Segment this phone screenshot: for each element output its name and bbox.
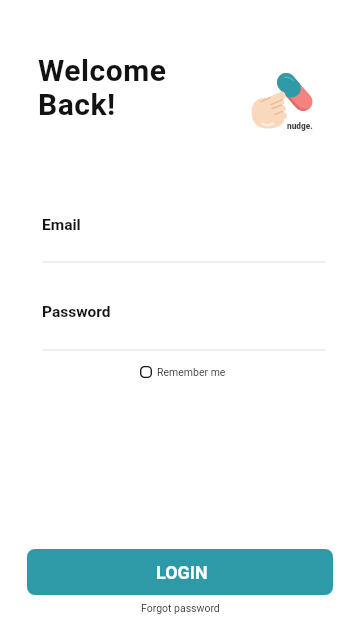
staticText: nudge. (287, 121, 313, 131)
staticText: Welcome Back! (38, 53, 167, 122)
button[interactable]: LOGIN (27, 549, 333, 595)
staticText: LOGIN (156, 562, 208, 583)
staticText: Remember me (157, 366, 226, 378)
button[interactable]: Remember me (140, 366, 226, 378)
button[interactable]: Password (42, 298, 326, 350)
button[interactable]: Forgot password (0, 602, 360, 614)
button[interactable]: Email (42, 211, 326, 263)
staticText: Forgot password (141, 602, 220, 614)
staticText: Password (42, 303, 111, 321)
staticText: Email (42, 216, 81, 234)
